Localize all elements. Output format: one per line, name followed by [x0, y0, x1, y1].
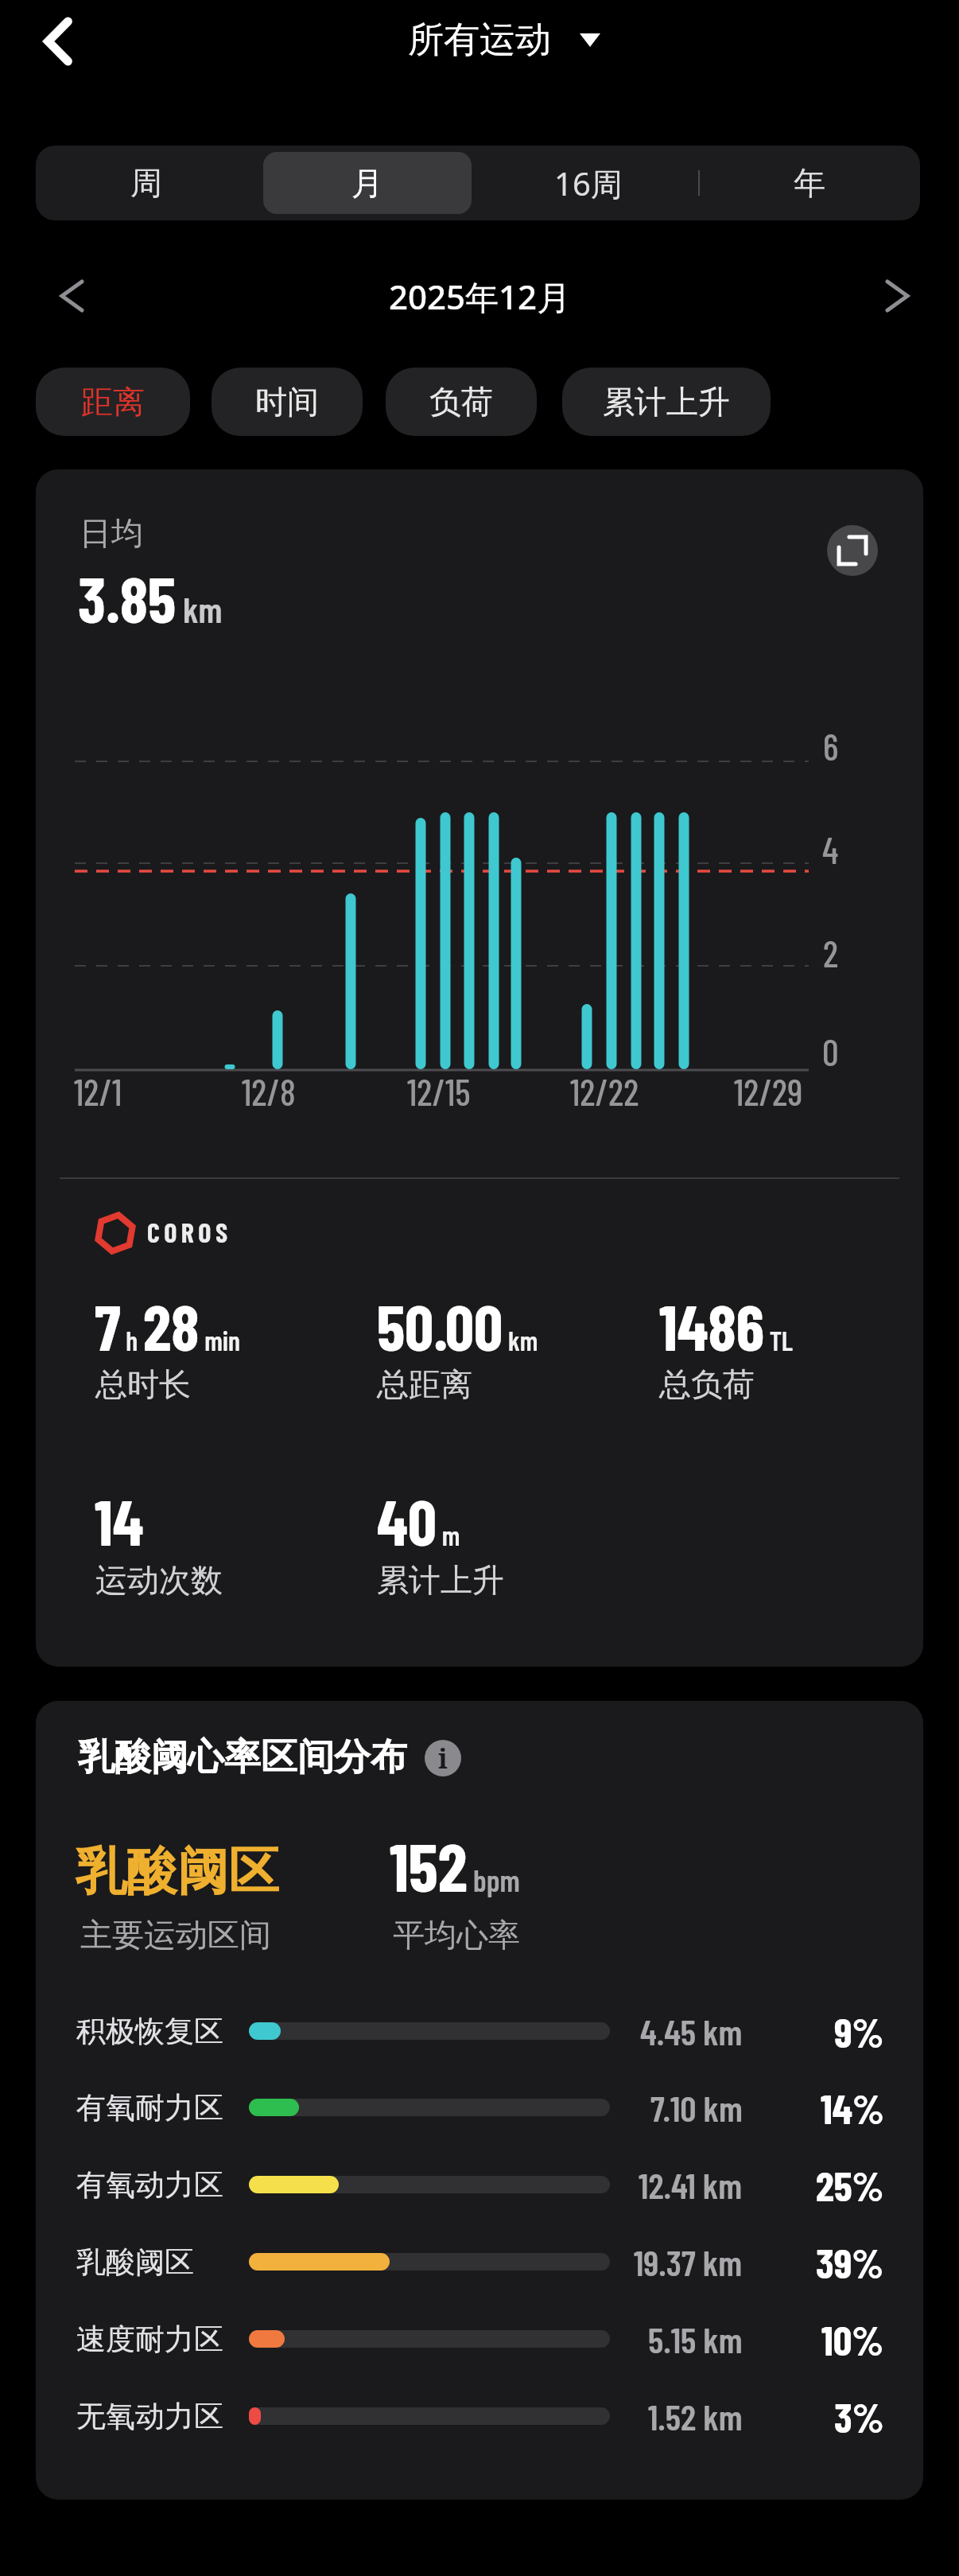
button[interactable]: 16周 — [478, 146, 699, 220]
button[interactable]: 负荷 — [386, 368, 537, 436]
button[interactable] — [46, 270, 97, 321]
staticText: 运动次数 — [95, 1560, 223, 1600]
staticText: 12/22 — [570, 1069, 639, 1113]
staticText: 4 — [822, 827, 839, 871]
button[interactable] — [29, 11, 89, 72]
staticText: 无氧动力区 — [76, 2398, 223, 2435]
staticText: 积极恢复区 — [76, 2013, 223, 2050]
staticText: 2 — [823, 931, 839, 975]
staticText: 负荷 — [429, 382, 493, 422]
staticText: 主要运动区间 — [80, 1915, 271, 1955]
staticText: 累计上升 — [377, 1560, 504, 1600]
staticText: 乳酸阈心率区间分布 — [78, 1734, 407, 1780]
button[interactable]: 累计上升 — [562, 368, 771, 436]
staticText: 16周 — [554, 161, 623, 205]
staticText: 1486 TL — [659, 1287, 793, 1364]
staticText: 7 h 28 min — [95, 1287, 240, 1364]
staticText: 平均心率 — [393, 1915, 520, 1955]
staticText: 7.10 km — [650, 2086, 743, 2129]
staticText: 年 — [794, 163, 825, 203]
staticText: 19.37 km — [634, 2240, 743, 2283]
staticText: 50.00 km — [377, 1287, 538, 1364]
button[interactable]: i — [425, 1740, 461, 1776]
button[interactable] — [827, 525, 878, 576]
button[interactable]: 月 — [257, 146, 478, 220]
staticText: 所有运动 — [408, 18, 551, 63]
staticText: 距离 — [81, 382, 145, 422]
staticText: 日均 — [80, 513, 143, 553]
staticText: 1.52 km — [648, 2395, 743, 2438]
staticText: 时间 — [255, 382, 319, 422]
button[interactable]: 周 — [36, 146, 257, 220]
staticText: 总距离 — [377, 1364, 472, 1404]
staticText: 总负荷 — [659, 1364, 755, 1404]
button[interactable]: 所有运动 — [0, 11, 959, 68]
staticText: 12.41 km — [639, 2163, 743, 2206]
staticText: 2025年12月 — [389, 274, 571, 319]
button[interactable] — [872, 270, 922, 321]
staticText: 3.85 km — [78, 559, 223, 636]
staticText: 累计上升 — [603, 382, 730, 422]
staticText: 152 bpm — [390, 1825, 520, 1905]
staticText: 4.45 km — [640, 2010, 743, 2053]
staticText: 12/29 — [734, 1069, 803, 1113]
button[interactable]: 年 — [699, 146, 920, 220]
staticText: 6 — [823, 724, 839, 768]
staticText: 周 — [130, 163, 162, 203]
staticText: 12/15 — [407, 1069, 471, 1113]
staticText: 月 — [351, 163, 383, 203]
staticText: 10% — [821, 2314, 884, 2364]
staticText: i — [438, 1740, 448, 1776]
staticText: 14% — [821, 2083, 884, 2132]
staticText: 有氧动力区 — [76, 2166, 223, 2204]
staticText: 40 m — [377, 1482, 460, 1558]
staticText: 乳酸阈区 — [76, 2243, 194, 2281]
staticText: 39% — [816, 2237, 884, 2286]
staticText: 12/1 — [74, 1069, 122, 1113]
staticText: 14 — [95, 1482, 144, 1558]
button[interactable]: 距离 — [36, 368, 190, 436]
staticText: 25% — [816, 2160, 884, 2209]
staticText: 0 — [822, 1029, 839, 1073]
staticText: 乳酸阈区 — [76, 1839, 279, 1904]
staticText: 5.15 km — [648, 2317, 743, 2360]
staticText: 有氧耐力区 — [76, 2089, 223, 2127]
staticText: 3% — [834, 2391, 884, 2441]
button[interactable]: 时间 — [212, 368, 363, 436]
staticText: 速度耐力区 — [76, 2321, 223, 2358]
staticText: 总时长 — [95, 1364, 191, 1404]
staticText: 9% — [834, 2006, 884, 2056]
staticText: COROS — [147, 1216, 232, 1248]
staticText: 12/8 — [242, 1069, 296, 1113]
